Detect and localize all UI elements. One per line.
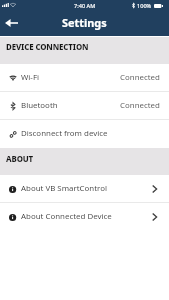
button[interactable]: Wi-Fi bbox=[0, 64, 169, 92]
staticText: 7:40 AM bbox=[74, 2, 96, 10]
button[interactable]: Bluetooth bbox=[0, 92, 169, 120]
button[interactable]: Back bbox=[1, 13, 22, 33]
button[interactable]: Disconnect from device bbox=[0, 120, 169, 148]
staticText: Connected bbox=[120, 100, 160, 111]
staticText: 100% bbox=[137, 2, 152, 10]
staticText: ABOUT bbox=[6, 154, 34, 165]
staticText: About Connected Device bbox=[21, 211, 112, 222]
staticText: Bluetooth bbox=[21, 100, 58, 111]
staticText: Wi-Fi bbox=[21, 72, 40, 83]
button[interactable]: About VB SmartControl bbox=[0, 175, 169, 203]
staticText: DEVICE CONNECTION bbox=[6, 42, 89, 53]
staticText: Connected bbox=[120, 72, 160, 83]
staticText: Disconnect from device bbox=[21, 128, 108, 139]
staticText: Settings bbox=[62, 15, 107, 30]
button[interactable]: About Connected Device bbox=[0, 203, 169, 231]
staticText: About VB SmartControl bbox=[21, 183, 108, 194]
